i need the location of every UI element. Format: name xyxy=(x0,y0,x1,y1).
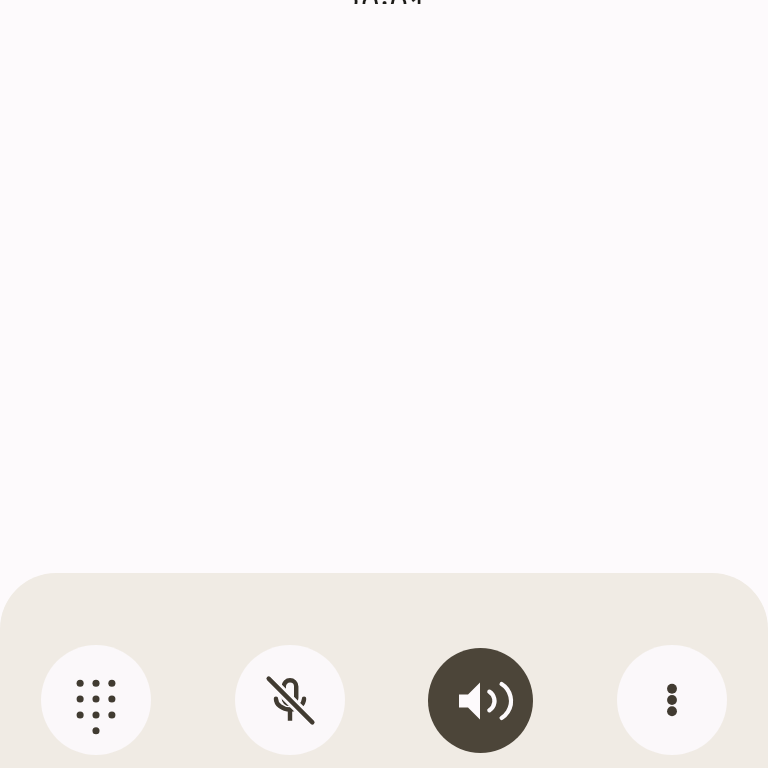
button[interactable]: Speaker on xyxy=(428,648,533,753)
button[interactable]: Unmute microphone xyxy=(235,645,345,755)
button[interactable]: More options xyxy=(617,645,727,755)
button[interactable]: Dialpad xyxy=(41,645,151,755)
staticText: 20:01 xyxy=(341,0,428,4)
